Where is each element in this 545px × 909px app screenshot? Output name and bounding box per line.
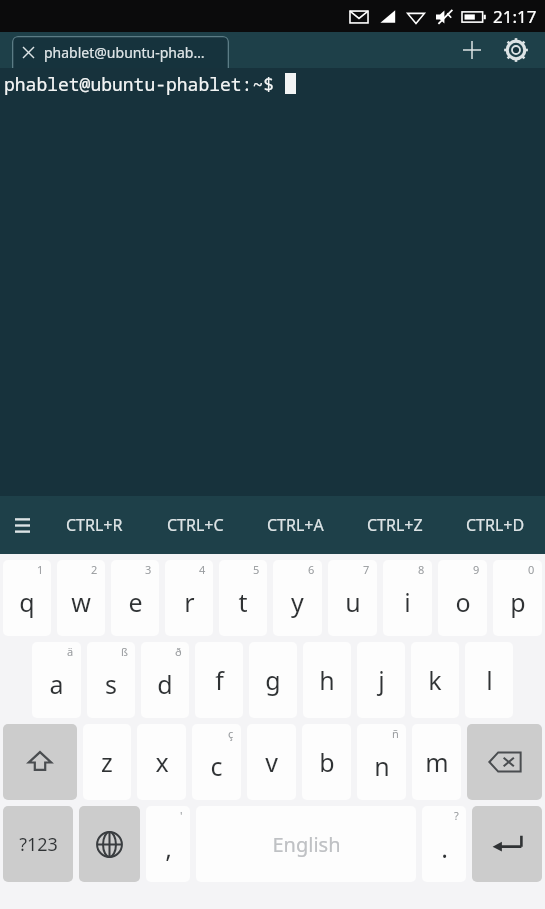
staticText: CTRL+A <box>267 514 324 536</box>
staticText: h <box>319 663 335 697</box>
button[interactable]: ? <box>422 806 466 882</box>
button[interactable]: Enter <box>472 806 542 882</box>
staticText: i <box>404 585 411 619</box>
button[interactable]: Settings <box>499 33 533 67</box>
staticText: 3 <box>145 562 152 577</box>
button[interactable]: CTRL+R <box>44 496 145 554</box>
button[interactable]: k <box>411 642 459 718</box>
button[interactable]: 7 <box>328 560 377 636</box>
staticText: , <box>165 831 172 865</box>
staticText: w <box>71 585 91 619</box>
button[interactable]: ?123 <box>3 806 73 882</box>
staticText: s <box>105 667 117 701</box>
staticText: c <box>210 749 223 783</box>
staticText: z <box>101 745 113 779</box>
staticText: ' <box>180 808 183 823</box>
staticText: ?123 <box>19 832 58 857</box>
staticText: CTRL+D <box>466 514 525 536</box>
button[interactable]: Change language <box>79 806 140 882</box>
staticText: q <box>19 585 35 619</box>
staticText: CTRL+C <box>167 514 224 536</box>
staticText: v <box>265 745 278 779</box>
staticText: ä <box>67 644 74 659</box>
button[interactable]: 3 <box>111 560 159 636</box>
button[interactable]: j <box>357 642 405 718</box>
staticText: ß <box>121 644 128 659</box>
staticText: English <box>272 831 341 858</box>
button[interactable]: h <box>303 642 351 718</box>
button[interactable]: CTRL+C <box>145 496 245 554</box>
button[interactable]: 1 <box>3 560 51 636</box>
staticText: a <box>49 667 64 701</box>
staticText: l <box>486 663 493 697</box>
button[interactable]: m <box>412 724 461 800</box>
staticText: j <box>378 663 385 697</box>
staticText: 5 <box>253 562 260 577</box>
button[interactable]: ð <box>141 642 189 718</box>
staticText: 9 <box>473 562 480 577</box>
button[interactable]: 9 <box>438 560 487 636</box>
staticText: 7 <box>363 562 370 577</box>
staticText: 8 <box>418 562 425 577</box>
staticText: CTRL+Z <box>367 514 423 536</box>
staticText: phablet@ubuntu-phablet:~$ <box>4 72 285 97</box>
button[interactable]: 8 <box>383 560 432 636</box>
staticText: ñ <box>392 726 399 741</box>
button[interactable]: 5 <box>219 560 267 636</box>
button[interactable]: Backspace <box>467 724 542 800</box>
button[interactable]: ñ <box>357 724 406 800</box>
staticText: phablet@ubuntu-phab… <box>44 43 205 62</box>
button[interactable]: l <box>465 642 513 718</box>
staticText: y <box>291 585 304 619</box>
button[interactable]: ß <box>87 642 135 718</box>
button[interactable]: ç <box>192 724 241 800</box>
button[interactable]: phablet@ubuntu-phablet:~$ <box>0 68 545 496</box>
staticText: n <box>374 749 390 783</box>
staticText: f <box>215 663 224 697</box>
staticText: ð <box>175 644 182 659</box>
button[interactable]: Menu <box>0 496 44 554</box>
button[interactable]: CTRL+D <box>445 496 545 554</box>
button[interactable]: English <box>196 806 416 882</box>
staticText: 21:17 <box>493 5 537 28</box>
staticText: 2 <box>91 562 98 577</box>
staticText: 4 <box>199 562 206 577</box>
button[interactable]: x <box>137 724 186 800</box>
staticText: g <box>265 663 281 697</box>
button[interactable]: Shift <box>3 724 77 800</box>
staticText: b <box>319 745 335 779</box>
button[interactable]: CTRL+A <box>245 496 345 554</box>
staticText: x <box>155 745 169 779</box>
staticText: u <box>345 585 361 619</box>
button[interactable]: b <box>302 724 351 800</box>
button[interactable]: 0 <box>493 560 542 636</box>
button[interactable]: 4 <box>165 560 213 636</box>
staticText: CTRL+R <box>66 514 123 536</box>
staticText: 6 <box>308 562 315 577</box>
button[interactable]: New tab <box>455 33 489 67</box>
button[interactable]: g <box>249 642 297 718</box>
staticText: . <box>441 831 448 865</box>
button[interactable]: v <box>247 724 296 800</box>
button[interactable]: Close tab <box>12 36 229 68</box>
staticText: k <box>428 663 442 697</box>
staticText: 0 <box>528 562 535 577</box>
other: Close tab <box>22 46 35 59</box>
button[interactable]: CTRL+Z <box>345 496 445 554</box>
staticText: ? <box>454 808 459 823</box>
staticText: d <box>157 667 173 701</box>
staticText: r <box>184 585 195 619</box>
button[interactable]: ä <box>32 642 81 718</box>
staticText: p <box>510 585 526 619</box>
staticText: m <box>425 745 449 779</box>
staticText: ç <box>228 726 234 741</box>
staticText: e <box>128 585 143 619</box>
button[interactable]: 6 <box>273 560 322 636</box>
button[interactable]: 2 <box>57 560 105 636</box>
button[interactable]: ' <box>146 806 190 882</box>
button[interactable]: z <box>83 724 131 800</box>
button[interactable]: f <box>195 642 243 718</box>
staticText: t <box>238 585 248 619</box>
staticText: 1 <box>37 562 44 577</box>
staticText: o <box>455 585 471 619</box>
